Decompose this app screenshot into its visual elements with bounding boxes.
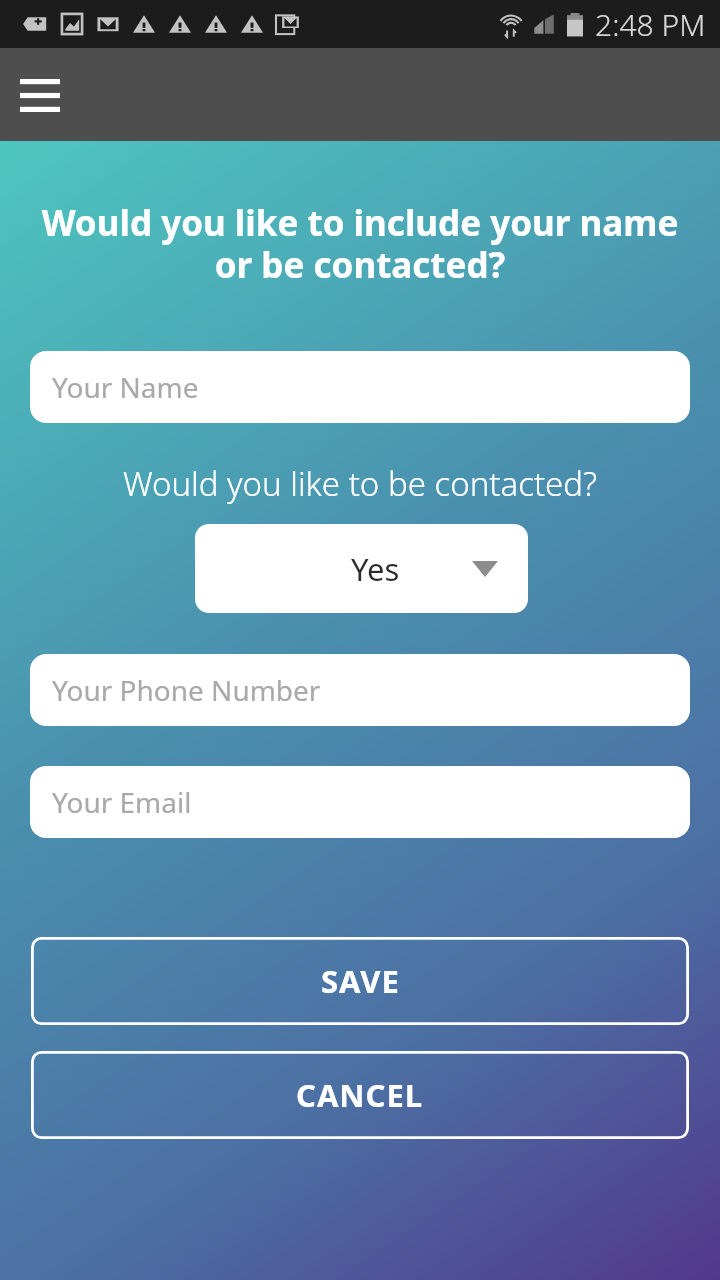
button[interactable]: Your Name	[30, 351, 690, 423]
button[interactable]: CANCEL	[31, 1051, 689, 1139]
button[interactable]: Open navigation menu	[14, 69, 66, 121]
staticText: CANCEL	[296, 1074, 424, 1116]
staticText: 2:48 PM	[595, 4, 706, 45]
button[interactable]: SAVE	[31, 937, 689, 1025]
staticText: Your Name	[52, 368, 199, 406]
button[interactable]: Yes	[195, 524, 528, 613]
button[interactable]: Your Email	[30, 766, 690, 838]
staticText: Would you like to include your name or b…	[22, 199, 698, 288]
staticText: SAVE	[321, 960, 400, 1002]
staticText: Would you like to be contacted?	[0, 461, 720, 506]
staticText: Your Phone Number	[52, 671, 321, 709]
staticText: Yes	[351, 548, 400, 590]
staticText: Your Email	[52, 783, 192, 821]
button[interactable]: Your Phone Number	[30, 654, 690, 726]
